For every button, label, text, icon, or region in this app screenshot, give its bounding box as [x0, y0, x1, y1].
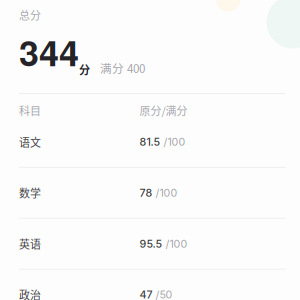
button[interactable]: 数学: [19, 168, 285, 218]
staticText: /100: [152, 186, 177, 199]
staticText: /100: [162, 237, 187, 250]
staticText: 语文: [19, 134, 41, 150]
button[interactable]: 政治: [19, 270, 285, 300]
staticText: 总分: [19, 7, 41, 23]
staticText: /50: [152, 288, 172, 300]
staticText: 政治: [19, 287, 41, 300]
staticText: 47: [139, 288, 152, 300]
staticText: 英语: [19, 236, 41, 252]
staticText: 78: [139, 186, 152, 199]
staticText: 95.5: [139, 237, 162, 250]
staticText: 344: [19, 26, 79, 77]
staticText: /100: [160, 135, 185, 148]
staticText: 科目: [19, 103, 41, 118]
staticText: 分: [79, 61, 90, 77]
button[interactable]: 英语: [19, 219, 285, 269]
staticText: 满分 400: [100, 60, 145, 76]
staticText: 原分/满分: [139, 103, 187, 118]
staticText: 81.5: [139, 135, 160, 148]
button[interactable]: 语文: [19, 117, 285, 167]
staticText: 数学: [19, 185, 41, 201]
